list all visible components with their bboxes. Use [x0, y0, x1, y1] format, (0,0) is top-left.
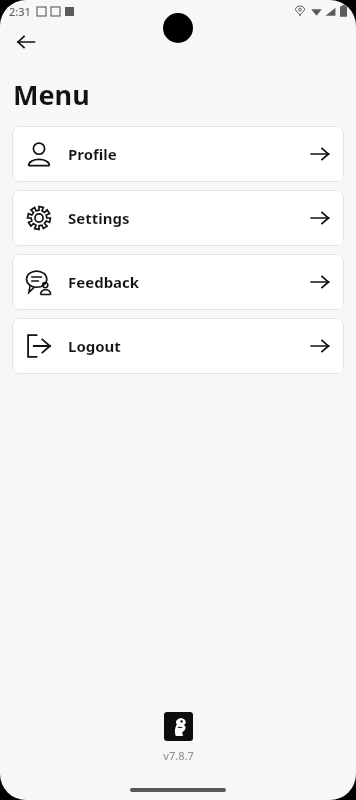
staticText: Menu — [13, 76, 90, 113]
button[interactable]: Settings — [12, 190, 344, 246]
button[interactable]: Back — [8, 24, 44, 60]
staticText: Settings — [68, 208, 130, 228]
staticText: v7.8.7 — [163, 748, 194, 763]
other: App logo — [164, 712, 193, 741]
button[interactable]: Feedback — [12, 254, 344, 310]
button[interactable]: Profile — [12, 126, 344, 182]
staticText: Logout — [68, 336, 121, 356]
button[interactable]: Logout — [12, 318, 344, 374]
staticText: Profile — [68, 144, 117, 164]
staticText: Feedback — [68, 272, 140, 292]
staticText: 2:31 — [9, 4, 31, 19]
